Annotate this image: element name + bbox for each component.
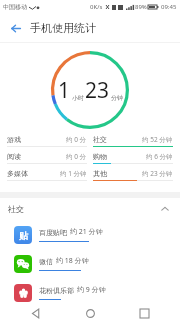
staticText: 贴	[19, 230, 28, 241]
staticText: 百度贴吧	[39, 228, 67, 237]
staticText: 约 21 分钟	[70, 227, 103, 237]
staticText: 其他	[93, 169, 107, 178]
staticText: 花粉俱乐部	[39, 286, 74, 295]
staticText: 约 0 分	[66, 135, 87, 144]
staticText: 中国移动	[3, 3, 27, 11]
staticText: 约 6 分钟	[146, 152, 173, 161]
other: Collapse	[158, 202, 172, 216]
staticText: 社交	[93, 135, 107, 144]
button[interactable]: Back	[0, 14, 30, 42]
staticText: 购物	[93, 152, 107, 161]
staticText: 分钟	[111, 94, 123, 102]
staticText: 约 52 分钟	[142, 135, 173, 144]
staticText: 约 0 分	[66, 152, 87, 161]
staticText: 约 9 分钟	[77, 285, 106, 295]
button[interactable]: Home	[72, 307, 108, 320]
button[interactable]: 微信	[0, 249, 180, 278]
button[interactable]: 阅读	[7, 152, 87, 164]
staticText: 阅读	[7, 152, 21, 161]
staticText: 09:45	[161, 3, 177, 11]
button[interactable]: 花粉俱乐部	[0, 278, 180, 307]
button[interactable]: 贴	[0, 220, 180, 249]
button[interactable]: 社交	[93, 135, 173, 147]
button[interactable]: 社交	[0, 198, 180, 220]
staticText: 手机使用统计	[30, 21, 96, 35]
staticText: 社交	[8, 204, 24, 214]
staticText: 0K/s	[90, 3, 103, 11]
staticText: 约 18 分钟	[56, 256, 89, 266]
staticText: 1	[58, 76, 71, 105]
staticText: 游戏	[7, 135, 21, 144]
button[interactable]: Back	[18, 307, 54, 320]
button[interactable]: 其他	[93, 169, 173, 181]
staticText: 多媒体	[7, 169, 28, 178]
staticText: 小时	[72, 94, 84, 102]
button[interactable]: 游戏	[7, 135, 87, 147]
button[interactable]: 多媒体	[7, 169, 87, 181]
staticText: 约 23 分钟	[142, 169, 173, 178]
staticText: 89%	[135, 3, 147, 11]
staticText: 23	[85, 76, 110, 105]
button[interactable]: 购物	[93, 152, 173, 164]
button[interactable]: Recents	[126, 307, 162, 320]
staticText: 约 1 分钟	[60, 169, 87, 178]
staticText: 微信	[39, 257, 53, 266]
